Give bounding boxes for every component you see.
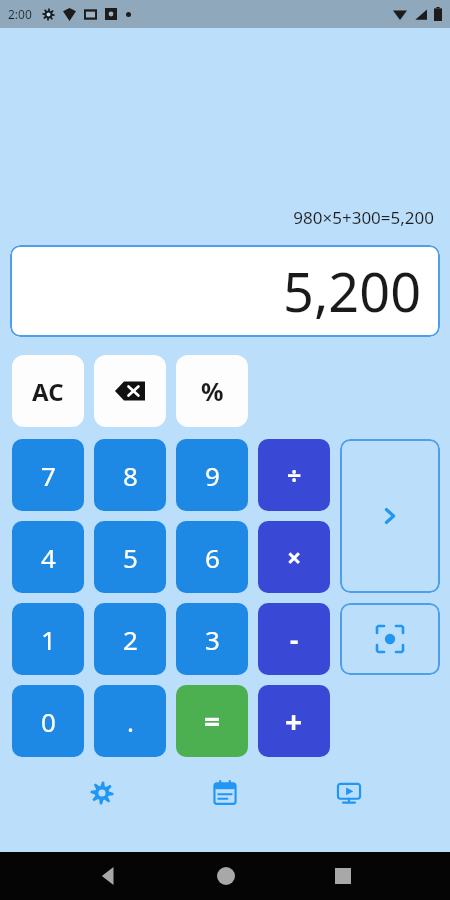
staticText: % xyxy=(201,374,224,408)
button[interactable]: 3 xyxy=(176,603,248,675)
staticText: - xyxy=(290,622,299,657)
staticText: 980×5+300=5,200 xyxy=(0,206,434,229)
staticText: 9 xyxy=(205,458,220,493)
staticText: 1 xyxy=(41,622,56,657)
button[interactable]: 9 xyxy=(176,439,248,511)
staticText: 3 xyxy=(205,622,220,657)
button[interactable]: = xyxy=(176,685,248,757)
staticText: 5,200 xyxy=(283,254,422,328)
staticText: 2 xyxy=(123,622,138,657)
button[interactable]: - xyxy=(258,603,330,675)
button[interactable]: % xyxy=(176,355,248,427)
staticText: 0 xyxy=(41,704,56,739)
button[interactable]: 5,200 xyxy=(10,245,440,337)
staticText: 8 xyxy=(123,458,138,493)
button[interactable]: 0 xyxy=(12,685,84,757)
button[interactable]: 6 xyxy=(176,521,248,593)
staticText: . xyxy=(127,704,134,739)
button[interactable]: Notes xyxy=(203,771,247,815)
button[interactable]: 5 xyxy=(94,521,166,593)
staticText: ÷ xyxy=(287,458,302,492)
button[interactable]: Scan xyxy=(340,603,440,675)
button[interactable]: More xyxy=(340,439,440,593)
staticText: 7 xyxy=(41,458,56,493)
staticText: AC xyxy=(32,375,64,408)
button[interactable]: AC xyxy=(12,355,84,427)
staticText: 2:00 xyxy=(8,6,32,22)
button[interactable]: 8 xyxy=(94,439,166,511)
button[interactable]: Settings xyxy=(80,771,124,815)
staticText: + xyxy=(285,701,303,742)
button[interactable]: ÷ xyxy=(258,439,330,511)
staticText: = xyxy=(204,702,221,740)
staticText: × xyxy=(287,540,302,574)
button[interactable]: 2 xyxy=(94,603,166,675)
staticText: 5 xyxy=(123,540,138,575)
button[interactable]: × xyxy=(258,521,330,593)
button[interactable]: . xyxy=(94,685,166,757)
staticText: 4 xyxy=(41,540,56,575)
button[interactable]: 7 xyxy=(12,439,84,511)
staticText: 6 xyxy=(205,540,220,575)
button[interactable]: + xyxy=(258,685,330,757)
button[interactable]: Video xyxy=(327,771,371,815)
button[interactable]: 1 xyxy=(12,603,84,675)
button[interactable]: Backspace xyxy=(94,355,166,427)
button[interactable]: 4 xyxy=(12,521,84,593)
